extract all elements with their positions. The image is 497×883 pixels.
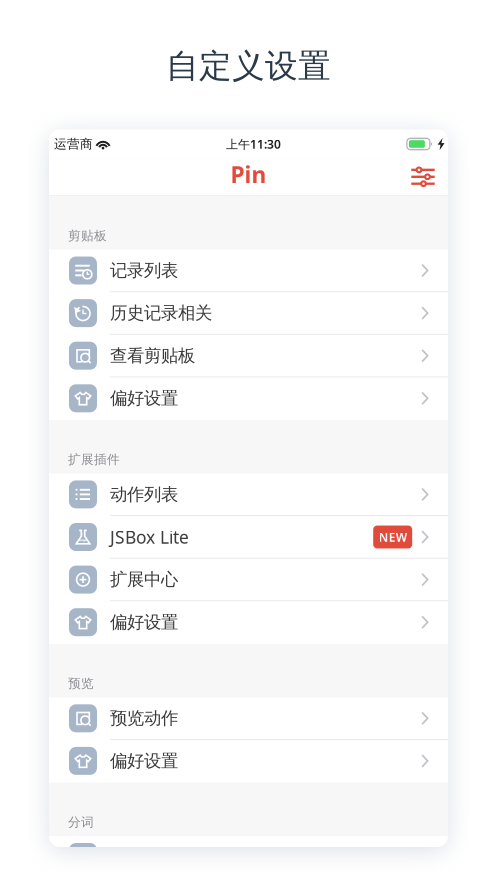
button[interactable]: 扩展中心 xyxy=(49,559,448,601)
staticText: 运营商 xyxy=(54,136,93,152)
staticText: 历史记录相关 xyxy=(110,302,212,324)
staticText: 偏好设置 xyxy=(110,387,178,409)
button[interactable]: 偏好设置 xyxy=(49,601,448,644)
button[interactable]: 预览动作 xyxy=(49,697,448,740)
staticText: 剪贴板 xyxy=(68,228,107,244)
staticText: NEW xyxy=(379,529,407,545)
button[interactable]: JSBox Lite xyxy=(49,516,448,559)
button[interactable]: 偏好设置 xyxy=(49,377,448,420)
staticText: 自定义设置 xyxy=(166,45,331,87)
staticText: 上午11:30 xyxy=(226,136,281,152)
button[interactable]: 动作列表 xyxy=(49,474,448,516)
staticText: 偏好设置 xyxy=(110,750,178,772)
staticText: 记录列表 xyxy=(110,260,178,281)
button[interactable]: 分词动作 xyxy=(49,836,448,879)
staticText: 扩展中心 xyxy=(110,569,178,590)
button[interactable]: 历史记录相关 xyxy=(49,292,448,335)
staticText: 预览动作 xyxy=(110,707,178,729)
button[interactable]: 记录列表 xyxy=(49,250,448,292)
staticText: 分词动作 xyxy=(110,846,178,868)
staticText: Pin xyxy=(230,159,266,190)
button[interactable]: Settings xyxy=(406,160,440,194)
staticText: 查看剪贴板 xyxy=(110,345,195,367)
staticText: 预览 xyxy=(68,675,94,691)
button[interactable]: 偏好设置 xyxy=(49,740,448,783)
staticText: 分词 xyxy=(68,814,94,830)
staticText: 扩展插件 xyxy=(68,452,120,468)
button[interactable]: 查看剪贴板 xyxy=(49,335,448,377)
staticText: 动作列表 xyxy=(110,483,178,505)
staticText: JSBox Lite xyxy=(110,525,189,549)
staticText: 偏好设置 xyxy=(110,611,178,633)
